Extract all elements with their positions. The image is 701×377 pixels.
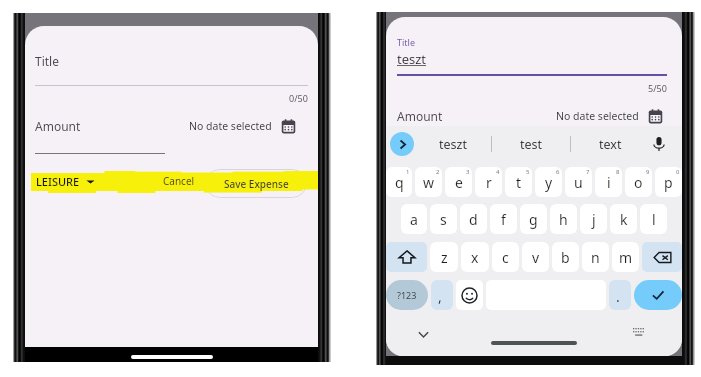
button[interactable]: z [430, 242, 458, 272]
button[interactable]: More suggestions [390, 132, 414, 156]
button[interactable]: Save Expense [205, 169, 307, 198]
staticText: 6 [556, 168, 560, 176]
staticText: Title [397, 36, 415, 48]
button[interactable]: m [612, 242, 639, 272]
staticText: 0/50 [289, 92, 308, 104]
staticText: 2 [436, 168, 440, 176]
staticText: test [520, 136, 543, 153]
staticText: g [529, 210, 538, 229]
button[interactable]: x [461, 242, 489, 272]
staticText: f [501, 210, 506, 229]
staticText: Amount [397, 108, 443, 124]
button[interactable]: p [655, 167, 682, 197]
staticText: ?123 [397, 289, 417, 301]
staticText: No date selected [556, 109, 639, 123]
staticText: m [619, 248, 633, 267]
button[interactable]: j [580, 204, 607, 234]
button[interactable]: u [565, 167, 592, 197]
button[interactable]: ?123 [386, 280, 428, 310]
staticText: 3 [466, 168, 470, 176]
staticText: t [516, 173, 522, 192]
button[interactable]: s [430, 204, 457, 234]
button[interactable]: . [609, 280, 631, 310]
staticText: b [561, 248, 570, 267]
staticText: , [438, 287, 442, 306]
staticText: LEISURE [36, 174, 80, 189]
staticText: x [471, 248, 479, 267]
staticText: c [502, 248, 509, 267]
button[interactable]: q [386, 167, 412, 197]
staticText: 5/50 [648, 82, 667, 94]
staticText: Title [35, 53, 59, 69]
button[interactable]: Voice input [649, 134, 669, 154]
staticText: Save Expense [224, 177, 289, 191]
staticText: Amount [35, 118, 81, 134]
button[interactable]: test [492, 132, 570, 156]
staticText: 1 [406, 168, 410, 176]
staticText: k [620, 210, 628, 229]
staticText: teszt [439, 136, 467, 153]
button[interactable]: n [582, 242, 609, 272]
staticText: 5 [526, 168, 530, 176]
staticText: w [423, 173, 435, 192]
button[interactable]: Switch keyboard [630, 325, 648, 343]
staticText: v [532, 248, 540, 267]
staticText: 7 [586, 168, 590, 176]
staticText: p [664, 173, 673, 192]
staticText: y [545, 173, 553, 192]
staticText: r [486, 173, 492, 192]
staticText: 8 [616, 168, 620, 176]
staticText: Cancel [163, 174, 195, 188]
button[interactable]: w [415, 167, 442, 197]
staticText: s [440, 210, 447, 229]
button[interactable]: Backspace [642, 242, 682, 272]
button[interactable]: y [535, 167, 562, 197]
button[interactable]: a [401, 204, 427, 234]
staticText: text [599, 136, 622, 153]
staticText: u [574, 173, 583, 192]
staticText: i [607, 173, 611, 192]
button[interactable]: o [625, 167, 652, 197]
staticText: . [616, 287, 620, 306]
button[interactable]: Hide keyboard [414, 325, 432, 343]
button[interactable]: Pick date [648, 109, 663, 124]
staticText: 0 [676, 168, 680, 176]
staticText: a [410, 210, 418, 229]
button[interactable]: Shift [386, 242, 427, 272]
button[interactable]: Emoji [456, 280, 483, 310]
button[interactable]: Cancel [158, 171, 200, 191]
button[interactable]: t [505, 167, 532, 197]
staticText: d [469, 210, 478, 229]
button[interactable]: Pick date [281, 119, 296, 134]
button[interactable]: l [640, 204, 667, 234]
button[interactable]: teszt [414, 132, 491, 156]
button[interactable]: LEISURE [33, 171, 98, 191]
button[interactable]: g [520, 204, 547, 234]
button[interactable]: text [571, 132, 649, 156]
staticText: q [395, 173, 404, 192]
button[interactable]: d [460, 204, 487, 234]
staticText: o [634, 173, 643, 192]
staticText: l [652, 210, 656, 229]
staticText: j [592, 210, 596, 229]
button[interactable]: v [522, 242, 549, 272]
button[interactable]: i [595, 167, 622, 197]
button[interactable]: e [445, 167, 472, 197]
staticText: n [591, 248, 600, 267]
button[interactable] [205, 169, 307, 198]
staticText: 4 [496, 168, 500, 176]
button[interactable]: h [550, 204, 577, 234]
staticText: teszt [397, 50, 427, 68]
staticText: h [559, 210, 568, 229]
staticText: e [455, 173, 463, 192]
button[interactable]: f [490, 204, 517, 234]
button[interactable]: Done [634, 280, 682, 310]
button[interactable]: b [552, 242, 579, 272]
staticText: No date selected [189, 119, 272, 133]
button[interactable]: , [431, 280, 453, 310]
button[interactable]: k [610, 204, 637, 234]
button[interactable]: r [475, 167, 502, 197]
staticText: z [441, 248, 448, 267]
button[interactable]: c [492, 242, 519, 272]
